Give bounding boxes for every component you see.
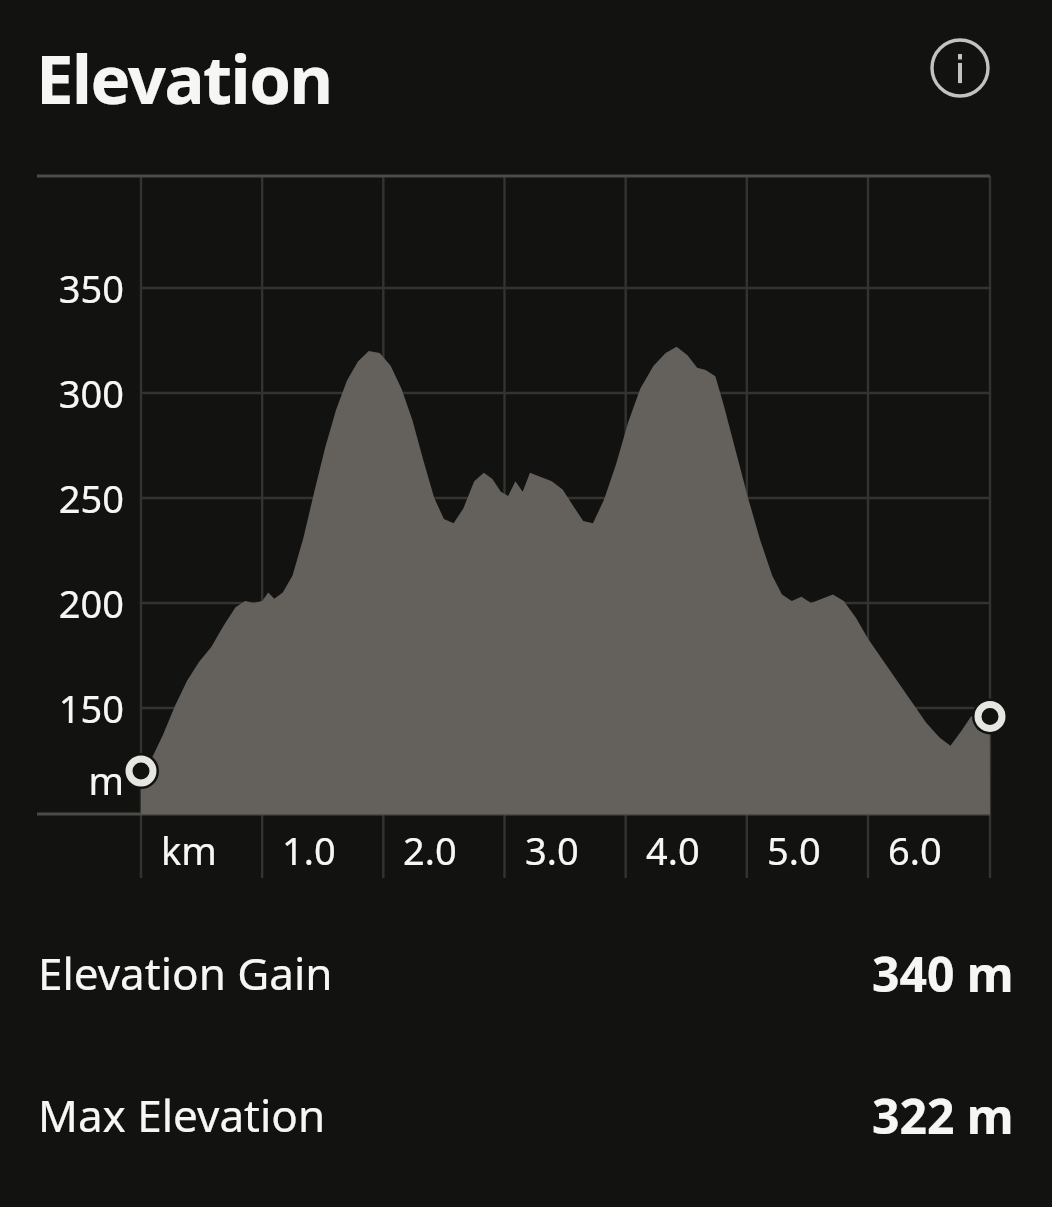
staticText: 322 m [872,1083,1014,1148]
staticText: 4.0 [646,824,700,876]
staticText: 150 [0,682,124,734]
staticText: 3.0 [525,824,579,876]
staticText: 5.0 [767,824,821,876]
staticText: Elevation [36,32,332,123]
button[interactable]: Information [924,32,996,104]
staticText: km [161,824,217,876]
staticText: 200 [0,577,124,629]
staticText: 350 [0,262,124,314]
staticText: 2.0 [403,824,457,876]
button[interactable]: Max Elevation [0,1050,1052,1180]
staticText: 300 [0,367,124,419]
staticText: Elevation Gain [38,943,333,1003]
staticText: 250 [0,472,124,524]
button[interactable]: Elevation Gain [0,908,1052,1038]
staticText: 6.0 [888,824,942,876]
staticText: Max Elevation [38,1085,326,1145]
staticText: 340 m [872,941,1014,1006]
staticText: m [0,754,124,806]
staticText: 1.0 [282,824,336,876]
